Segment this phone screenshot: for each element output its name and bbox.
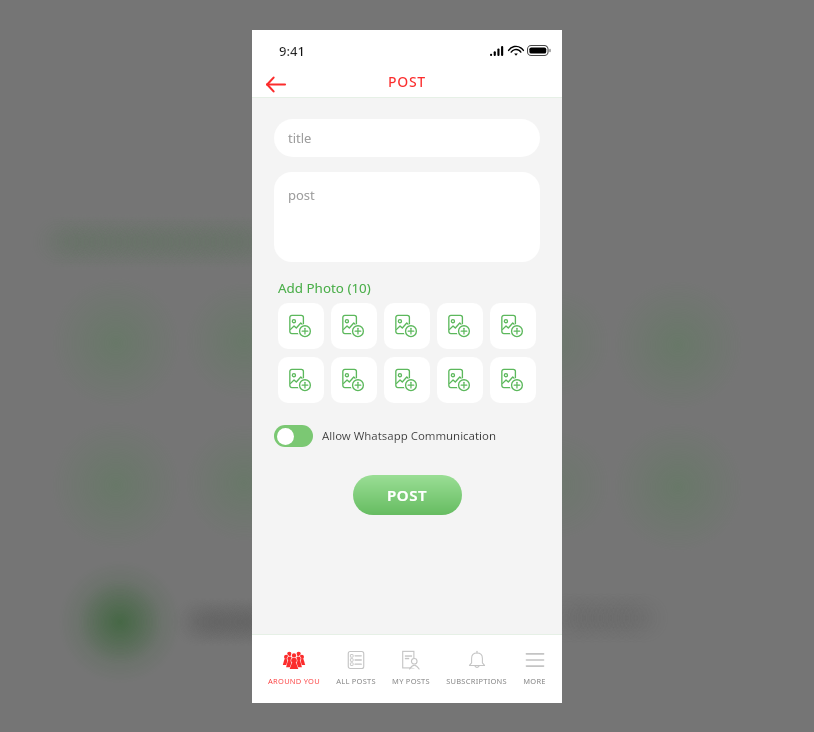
- staticText: Allow Whatsapp Communication: [322, 428, 496, 444]
- staticText: MY POSTS: [392, 676, 430, 686]
- button[interactable]: Add photo: [490, 357, 536, 403]
- staticText: MORE: [523, 676, 546, 686]
- button[interactable]: Add photo: [490, 303, 536, 349]
- button[interactable]: Add photo: [437, 303, 483, 349]
- staticText: ALL POSTS: [336, 676, 376, 686]
- button[interactable]: ALL POSTS: [336, 635, 376, 703]
- staticText: SUBSCRIPTIONS: [446, 676, 507, 686]
- staticText: title: [288, 129, 312, 147]
- button[interactable]: SUBSCRIPTIONS: [446, 635, 507, 703]
- button[interactable]: MY POSTS: [392, 635, 430, 703]
- staticText: post: [288, 186, 315, 204]
- button[interactable]: Add photo: [331, 357, 377, 403]
- button[interactable]: AROUND YOU: [268, 635, 320, 703]
- button[interactable]: POST: [353, 475, 462, 515]
- staticText: POST: [387, 485, 428, 505]
- button[interactable]: Allow Whatsapp Communication toggle, on: [274, 425, 496, 447]
- button[interactable]: Add photo: [384, 357, 430, 403]
- button[interactable]: title: [274, 119, 540, 157]
- button[interactable]: Add photo: [331, 303, 377, 349]
- button[interactable]: Add photo: [278, 357, 324, 403]
- button[interactable]: Back: [260, 71, 290, 97]
- button[interactable]: Add photo: [437, 357, 483, 403]
- button[interactable]: Add photo: [278, 303, 324, 349]
- staticText: 9:41: [279, 42, 305, 60]
- button[interactable]: Add photo: [384, 303, 430, 349]
- button[interactable]: post: [274, 172, 540, 262]
- staticText: Add Photo (10): [278, 279, 371, 297]
- staticText: AROUND YOU: [268, 676, 320, 686]
- button[interactable]: MORE: [523, 635, 546, 703]
- staticText: POST: [388, 72, 426, 91]
